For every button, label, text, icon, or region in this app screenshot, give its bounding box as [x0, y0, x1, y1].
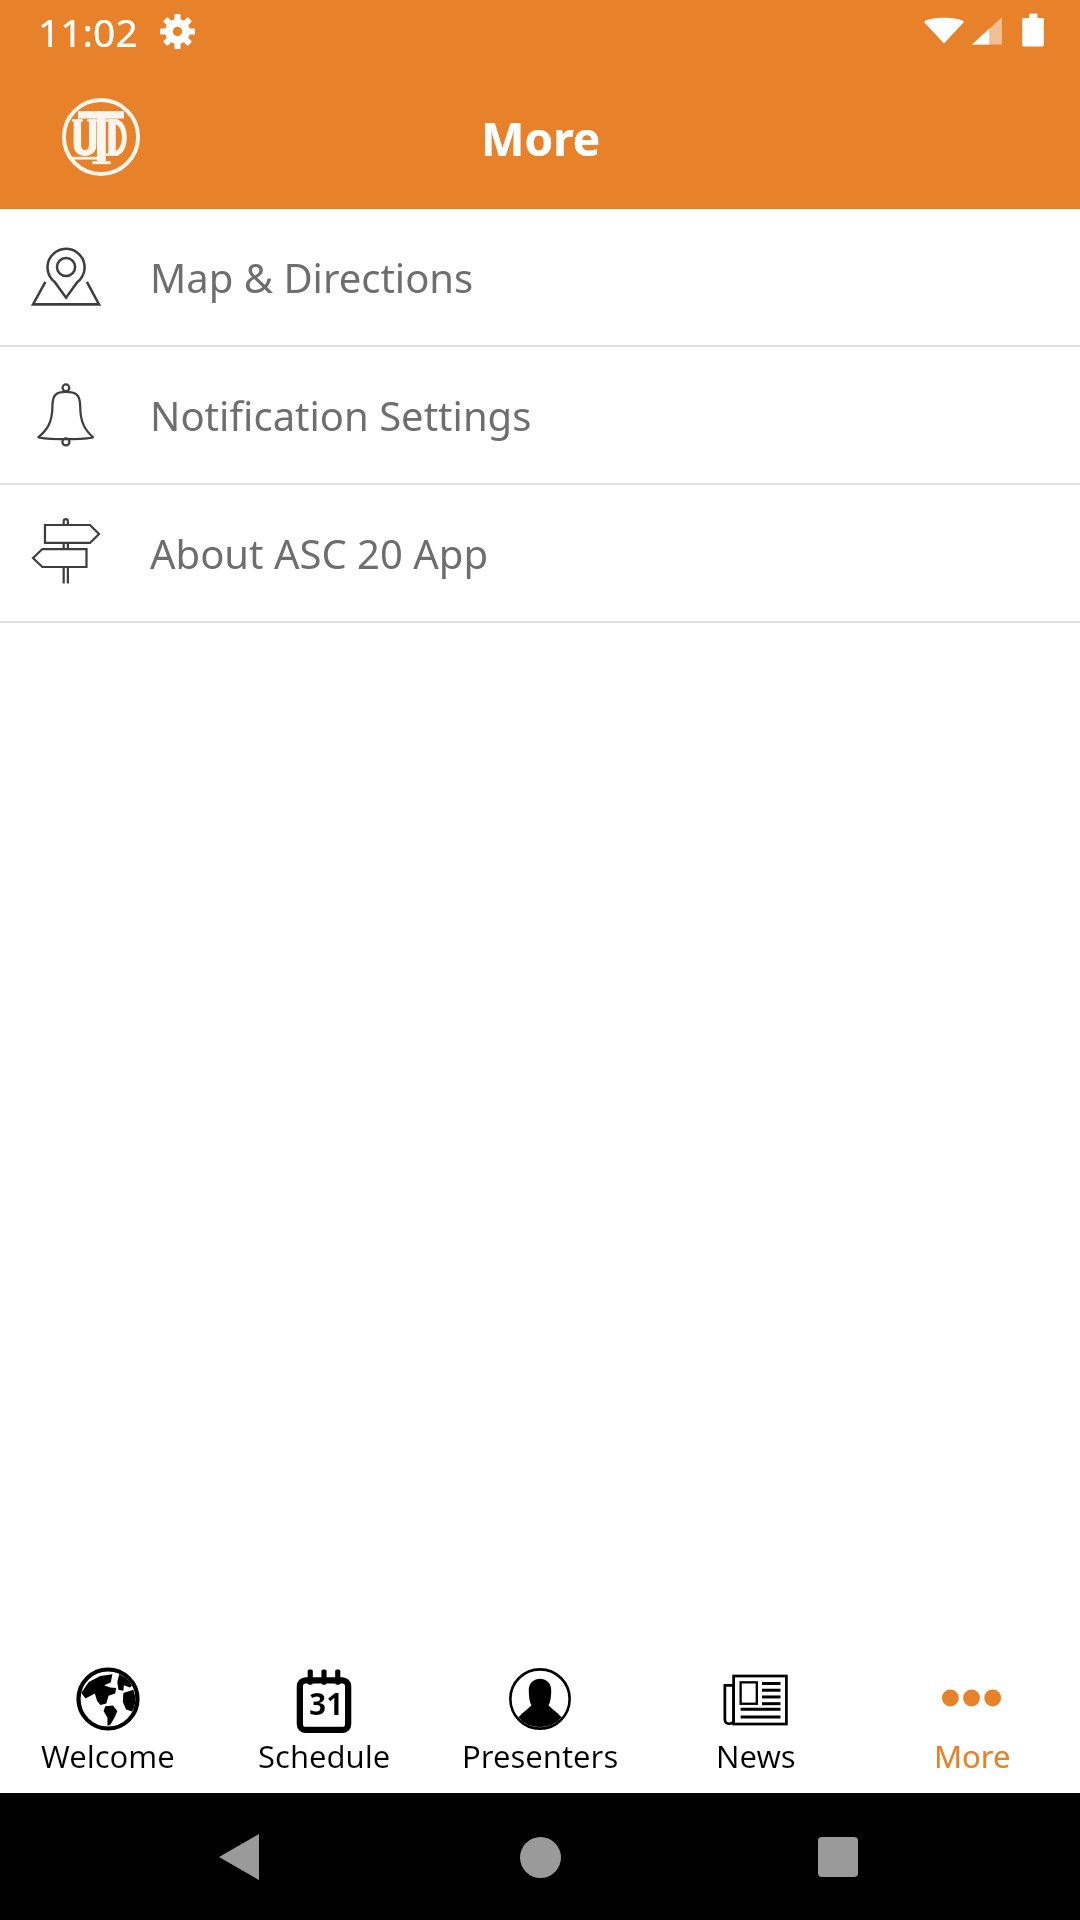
- button[interactable]: UTD Logo: [60, 96, 142, 178]
- button[interactable]: Presenters: [432, 1665, 648, 1777]
- staticText: Notification Settings: [150, 388, 532, 442]
- button[interactable]: Back: [199, 1817, 279, 1897]
- staticText: 31: [309, 1683, 344, 1724]
- button[interactable]: More: [864, 1665, 1080, 1777]
- staticText: Welcome: [41, 1735, 175, 1777]
- button[interactable]: Home: [500, 1817, 580, 1897]
- staticText: 11:02: [38, 5, 138, 58]
- staticText: More: [481, 107, 601, 170]
- staticText: About ASC 20 App: [150, 526, 489, 580]
- staticText: News: [716, 1735, 796, 1777]
- button[interactable]: Recents: [798, 1817, 878, 1897]
- staticText: Map & Directions: [150, 250, 474, 304]
- button[interactable]: News: [648, 1665, 864, 1777]
- staticText: Schedule: [258, 1735, 391, 1777]
- button[interactable]: About ASC 20 App: [0, 485, 1080, 621]
- button[interactable]: 31: [216, 1665, 432, 1777]
- button[interactable]: Welcome: [0, 1665, 216, 1777]
- staticText: More: [934, 1735, 1011, 1777]
- staticText: Presenters: [462, 1735, 619, 1777]
- button[interactable]: Map & Directions: [0, 209, 1080, 345]
- button[interactable]: Notification Settings: [0, 347, 1080, 483]
